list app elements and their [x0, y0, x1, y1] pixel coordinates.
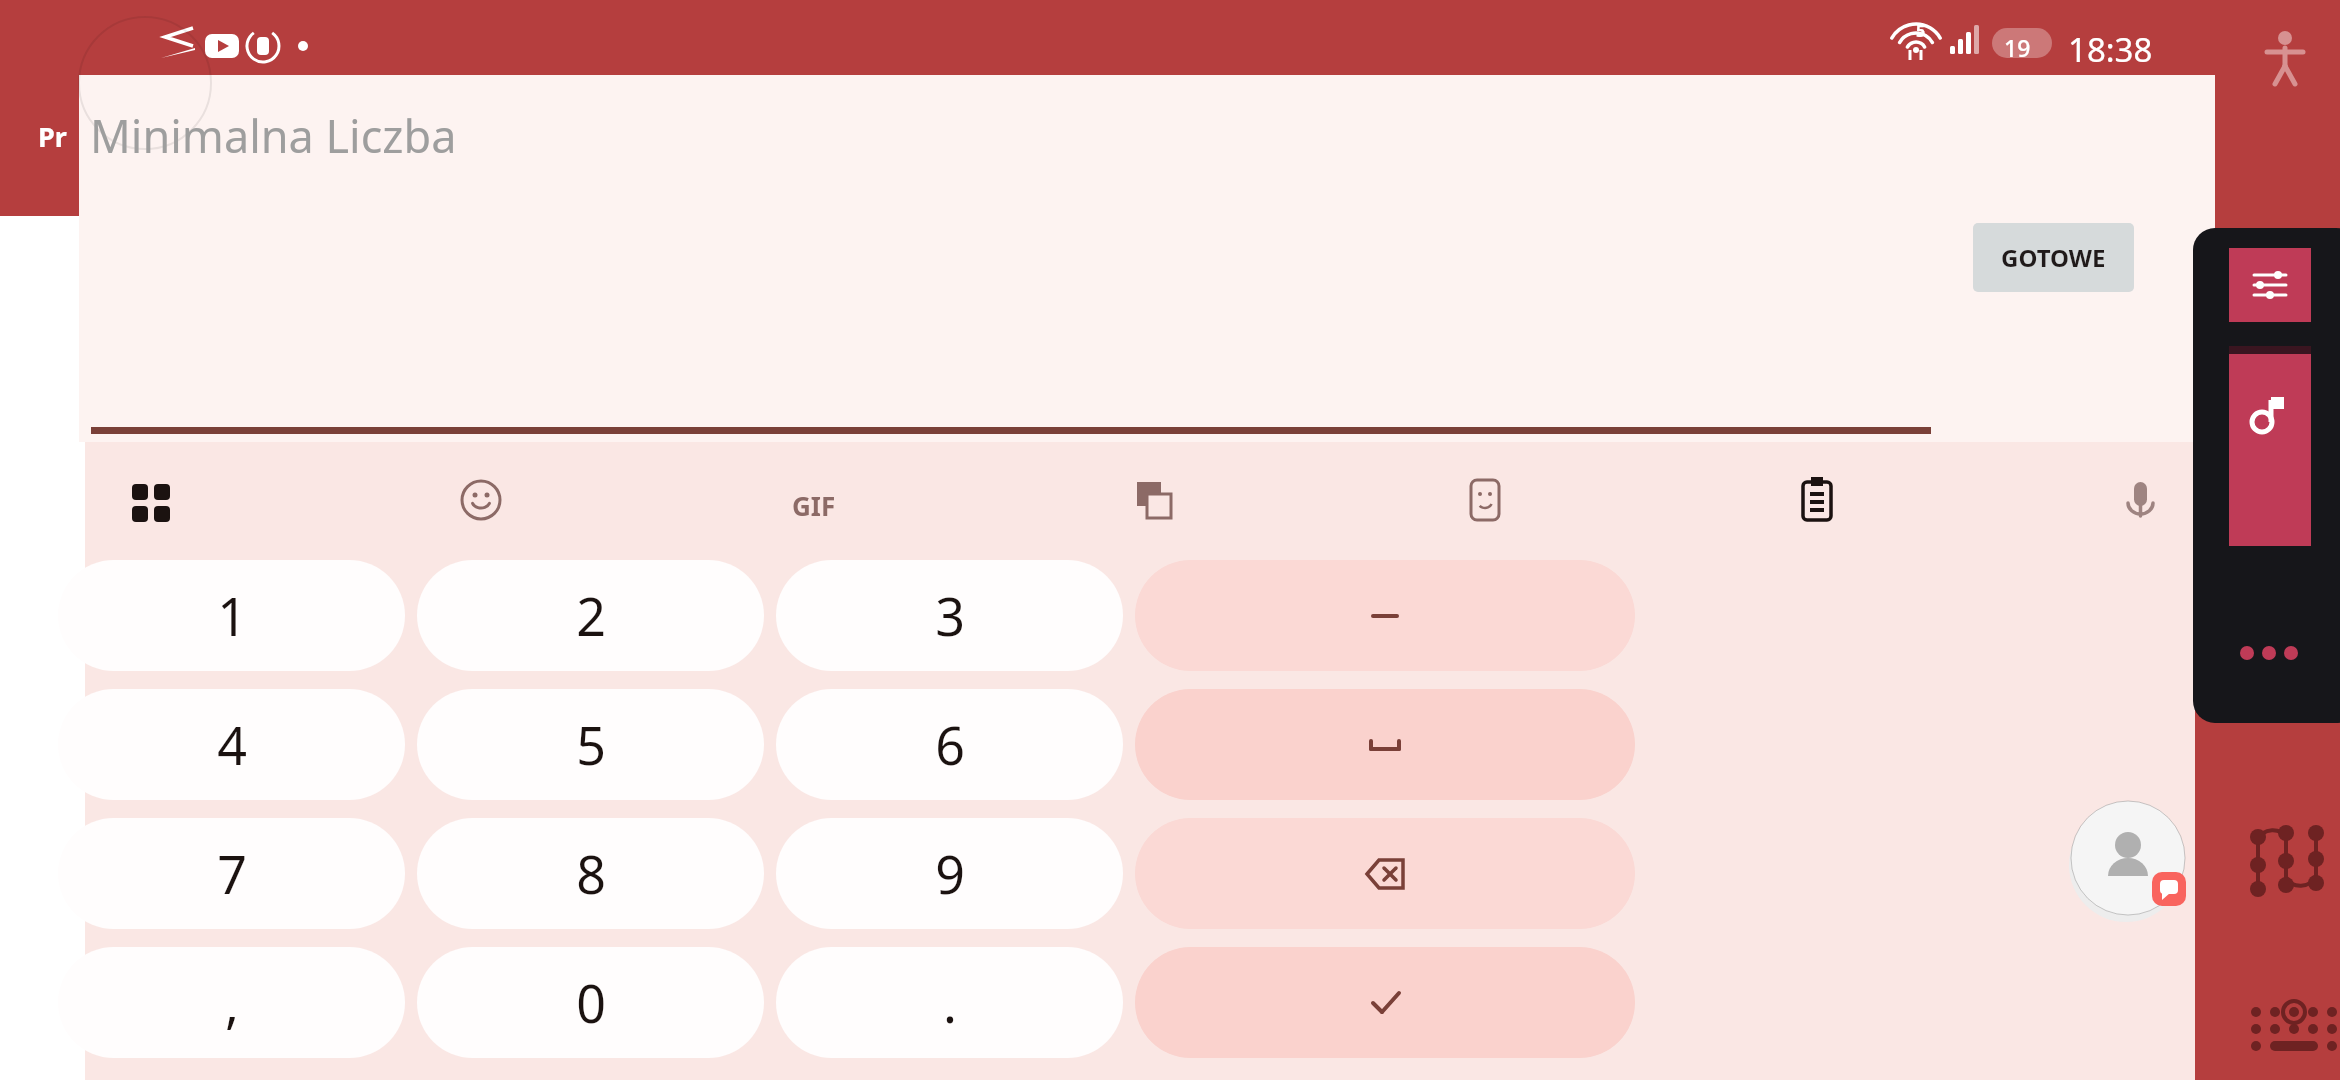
staticText: 5	[576, 709, 606, 780]
button[interactable]: Minus	[1135, 560, 1635, 671]
button[interactable]: 5	[417, 689, 764, 800]
button[interactable]: 9	[776, 818, 1123, 929]
button[interactable]: Backspace	[1135, 818, 1635, 929]
button[interactable]: Show keyboard	[2240, 990, 2340, 1070]
button[interactable]: .	[776, 947, 1123, 1058]
button[interactable]: Translate	[1123, 470, 1183, 530]
staticText: 7	[217, 838, 247, 909]
button[interactable]: 4	[58, 689, 405, 800]
button[interactable]: 1	[58, 560, 405, 671]
button[interactable]: Clipboard	[1787, 470, 1847, 530]
staticText: 18:38	[2068, 27, 2153, 72]
staticText: 0	[576, 967, 606, 1038]
staticText: 4	[217, 709, 247, 780]
staticText: 9	[935, 838, 965, 909]
button[interactable]: Space	[1135, 689, 1635, 800]
button[interactable]: Sound settings	[2229, 248, 2311, 322]
button[interactable]: Gestures	[2240, 805, 2340, 915]
staticText: Pr	[38, 118, 67, 155]
button[interactable]: Chat bubble	[2066, 800, 2191, 925]
staticText: GIF	[792, 488, 836, 523]
button[interactable]: Switch keyboard	[118, 470, 178, 530]
button[interactable]: 3	[776, 560, 1123, 671]
button[interactable]: Emoji	[451, 470, 511, 530]
button[interactable]: Stickers	[1455, 470, 1515, 530]
staticText: .	[943, 967, 957, 1038]
button[interactable]: ,	[58, 947, 405, 1058]
button[interactable]: 2	[417, 560, 764, 671]
button[interactable]: Media volume	[2229, 346, 2311, 546]
button[interactable]: 0	[417, 947, 764, 1058]
staticText: 2	[576, 580, 606, 651]
button[interactable]: GOTOWE	[1973, 223, 2134, 292]
staticText: GOTOWE	[2001, 241, 2106, 274]
staticText: ,	[225, 967, 239, 1038]
button[interactable]: GIF	[790, 470, 850, 530]
staticText: 19	[2004, 32, 2031, 63]
button[interactable]: More options	[2229, 628, 2311, 678]
button[interactable]: Enter	[1135, 947, 1635, 1058]
staticText: 3	[935, 580, 965, 651]
button[interactable]: Voice input	[2110, 470, 2170, 530]
staticText: 1	[217, 580, 247, 651]
staticText: 8	[576, 838, 606, 909]
button[interactable]: 7	[58, 818, 405, 929]
staticText: Minimalna Liczba	[90, 105, 457, 166]
button[interactable]: Accessibility	[2255, 28, 2315, 88]
button[interactable]: 8	[417, 818, 764, 929]
button[interactable]: 6	[776, 689, 1123, 800]
staticText: 5	[1916, 20, 1926, 42]
staticText: 6	[935, 709, 965, 780]
